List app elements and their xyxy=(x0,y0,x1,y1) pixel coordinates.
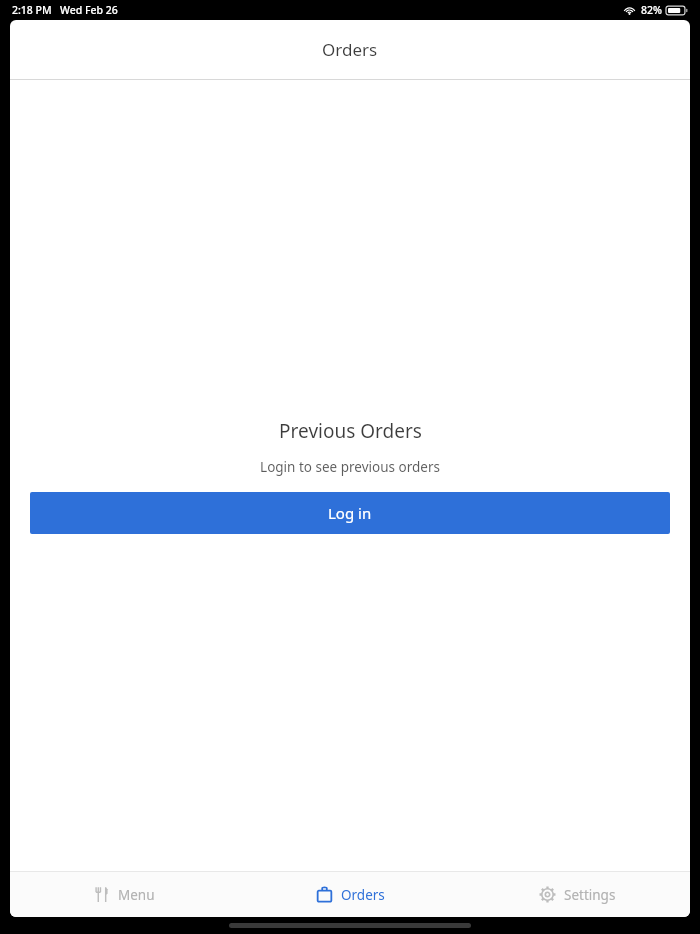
button[interactable]: Settings xyxy=(463,872,690,917)
staticText: 82% xyxy=(641,3,662,17)
staticText: Login to see previous orders xyxy=(260,458,440,476)
button[interactable]: Menu xyxy=(10,872,236,917)
staticText: Previous Orders xyxy=(279,418,422,444)
staticText: Wed Feb 26 xyxy=(60,3,118,17)
button[interactable]: Log in xyxy=(30,492,670,534)
staticText: Orders xyxy=(322,38,378,61)
button[interactable]: Orders xyxy=(236,872,463,917)
staticText: Log in xyxy=(328,503,372,523)
staticText: Orders xyxy=(341,886,385,904)
staticText: 2:18 PM xyxy=(12,3,52,17)
staticText: Menu xyxy=(118,886,155,904)
staticText: Settings xyxy=(564,886,616,904)
